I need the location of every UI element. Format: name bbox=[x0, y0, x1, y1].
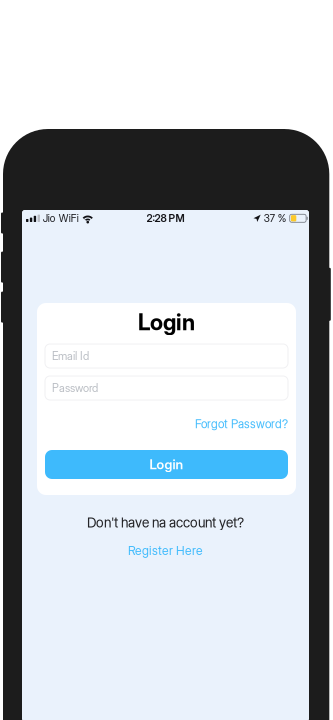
staticText: 37 % bbox=[264, 212, 287, 224]
staticText: Forgot Password? bbox=[195, 417, 288, 431]
staticText: Don't have na account yet? bbox=[87, 514, 244, 531]
staticText: Register Here bbox=[128, 543, 203, 558]
staticText: Email Id bbox=[52, 349, 89, 363]
staticText: 2:28 PM bbox=[146, 212, 184, 225]
button[interactable]: Forgot Password? bbox=[45, 417, 288, 431]
button[interactable]: Register Here bbox=[22, 543, 309, 558]
staticText: Login bbox=[149, 456, 183, 472]
staticText: Login bbox=[138, 308, 195, 335]
button[interactable]: Login bbox=[45, 450, 288, 479]
staticText: Password bbox=[52, 381, 98, 395]
staticText: Jio WiFi bbox=[43, 212, 79, 224]
